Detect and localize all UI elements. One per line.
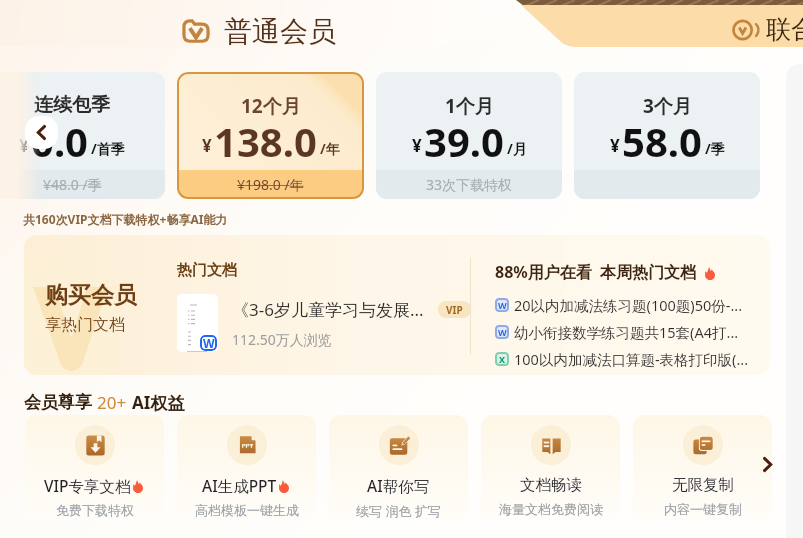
- staticText: 《3-6岁儿童学习与发展...: [232, 298, 424, 321]
- staticText: 20以内加减法练习题(100题)50份-...: [514, 295, 743, 315]
- button[interactable]: W: [495, 322, 739, 342]
- staticText: X: [499, 353, 506, 365]
- staticText: 112.50万人浏览: [232, 330, 332, 349]
- staticText: /月: [507, 139, 527, 158]
- staticText: W: [203, 335, 215, 351]
- button[interactable]: W: [177, 294, 471, 352]
- button[interactable]: 3个月: [574, 72, 760, 199]
- button[interactable]: 购买会员: [24, 235, 770, 375]
- staticText: 12个月: [241, 93, 301, 119]
- staticText: 共160次VIP文档下载特权+畅享AI能力: [23, 211, 228, 227]
- staticText: ¥48.0 /季: [43, 175, 102, 194]
- staticText: ¥: [412, 134, 422, 157]
- staticText: AI帮你写: [367, 475, 430, 496]
- staticText: 88%用户在看 本周热门文档: [495, 261, 697, 283]
- staticText: 连续包季: [34, 93, 110, 117]
- button[interactable]: Next benefits: [748, 438, 786, 490]
- staticText: /季: [705, 139, 725, 158]
- staticText: ¥198.0 /年: [237, 175, 304, 194]
- button[interactable]: VIP专享文档: [25, 415, 164, 521]
- button[interactable]: 12个月: [177, 72, 364, 199]
- button[interactable]: 连续包季: [0, 72, 165, 199]
- staticText: 1个月: [445, 93, 494, 119]
- staticText: 58.0: [622, 114, 702, 168]
- staticText: 会员尊享: [24, 392, 92, 413]
- staticText: 文档畅读: [520, 475, 582, 495]
- staticText: 3个月: [643, 93, 692, 119]
- staticText: 普通会员: [224, 14, 336, 49]
- button[interactable]: 文档畅读: [481, 415, 620, 521]
- staticText: 幼小衔接数学练习题共15套(A4打...: [514, 322, 739, 342]
- staticText: 联合: [766, 14, 803, 45]
- staticText: 高档模板一键生成: [195, 502, 299, 518]
- staticText: 33次下载特权: [426, 175, 513, 194]
- staticText: AI生成PPT: [202, 475, 277, 496]
- staticText: 100以内加减法口算题-表格打印版(...: [514, 349, 749, 369]
- staticText: /首季: [91, 139, 125, 158]
- button[interactable]: AI帮你写: [329, 415, 468, 521]
- staticText: 享热门文档: [45, 315, 125, 335]
- staticText: W: [498, 326, 507, 338]
- staticText: 购买会员: [45, 281, 137, 310]
- button[interactable]: 无限复制: [633, 415, 772, 521]
- staticText: VIP: [446, 303, 463, 317]
- staticText: 20+: [97, 391, 127, 414]
- staticText: 热门文档: [177, 261, 237, 280]
- button[interactable]: Previous plans: [25, 116, 58, 149]
- staticText: AI权益: [132, 391, 185, 414]
- staticText: ¥: [202, 134, 212, 157]
- staticText: VIP专享文档: [44, 475, 131, 496]
- staticText: 海量文档免费阅读: [499, 501, 603, 517]
- staticText: 39.0: [424, 114, 504, 168]
- staticText: 138.0: [214, 114, 317, 168]
- staticText: ¥: [610, 134, 620, 157]
- staticText: 免费下载特权: [56, 502, 134, 518]
- staticText: /年: [320, 139, 340, 158]
- button[interactable]: X: [495, 349, 749, 369]
- staticText: W: [498, 299, 507, 311]
- button[interactable]: 联合: [733, 14, 803, 45]
- staticText: ¥: [19, 134, 29, 157]
- staticText: 内容一键复制: [664, 501, 742, 517]
- button[interactable]: 普通会员: [182, 14, 336, 49]
- staticText: 续写 润色 扩写: [356, 502, 441, 520]
- staticText: 0.0: [31, 114, 88, 168]
- staticText: 无限复制: [672, 475, 734, 495]
- button[interactable]: 1个月: [376, 72, 562, 199]
- button[interactable]: W: [495, 295, 743, 315]
- button[interactable]: AI生成PPT: [177, 415, 316, 521]
